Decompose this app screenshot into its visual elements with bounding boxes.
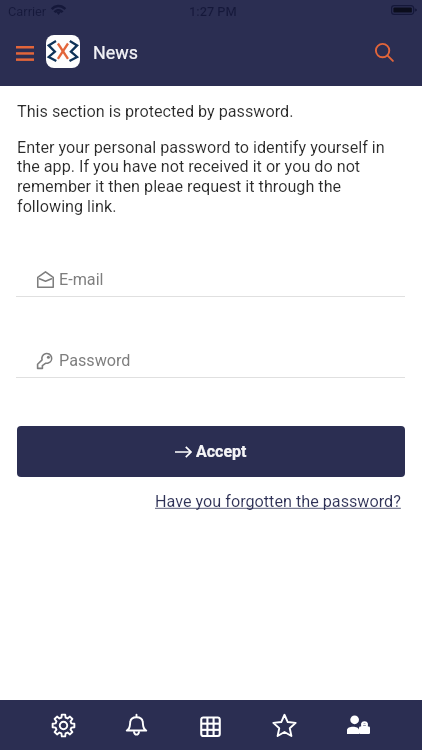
staticText: Accept xyxy=(196,442,247,461)
staticText: Enter your personal password to identify… xyxy=(17,138,405,216)
button[interactable]: Open navigation menu xyxy=(6,35,43,72)
button[interactable]: Notifications xyxy=(100,700,173,750)
button[interactable]: Private area xyxy=(321,700,395,750)
staticText: News xyxy=(93,42,138,63)
staticText: Password xyxy=(59,351,131,370)
button[interactable]: Dashboard xyxy=(173,700,247,750)
button[interactable]: Search xyxy=(363,31,405,73)
staticText: E-mail xyxy=(59,270,104,289)
staticText: Carrier xyxy=(8,4,47,19)
staticText: This section is protected by password. xyxy=(17,102,294,121)
button[interactable]: Accept xyxy=(17,426,405,477)
staticText: 1:27 PM xyxy=(189,4,237,19)
button[interactable]: Have you forgotten the password? xyxy=(155,492,401,511)
button[interactable]: Settings xyxy=(27,700,100,750)
button[interactable]: Favourites xyxy=(247,700,321,750)
